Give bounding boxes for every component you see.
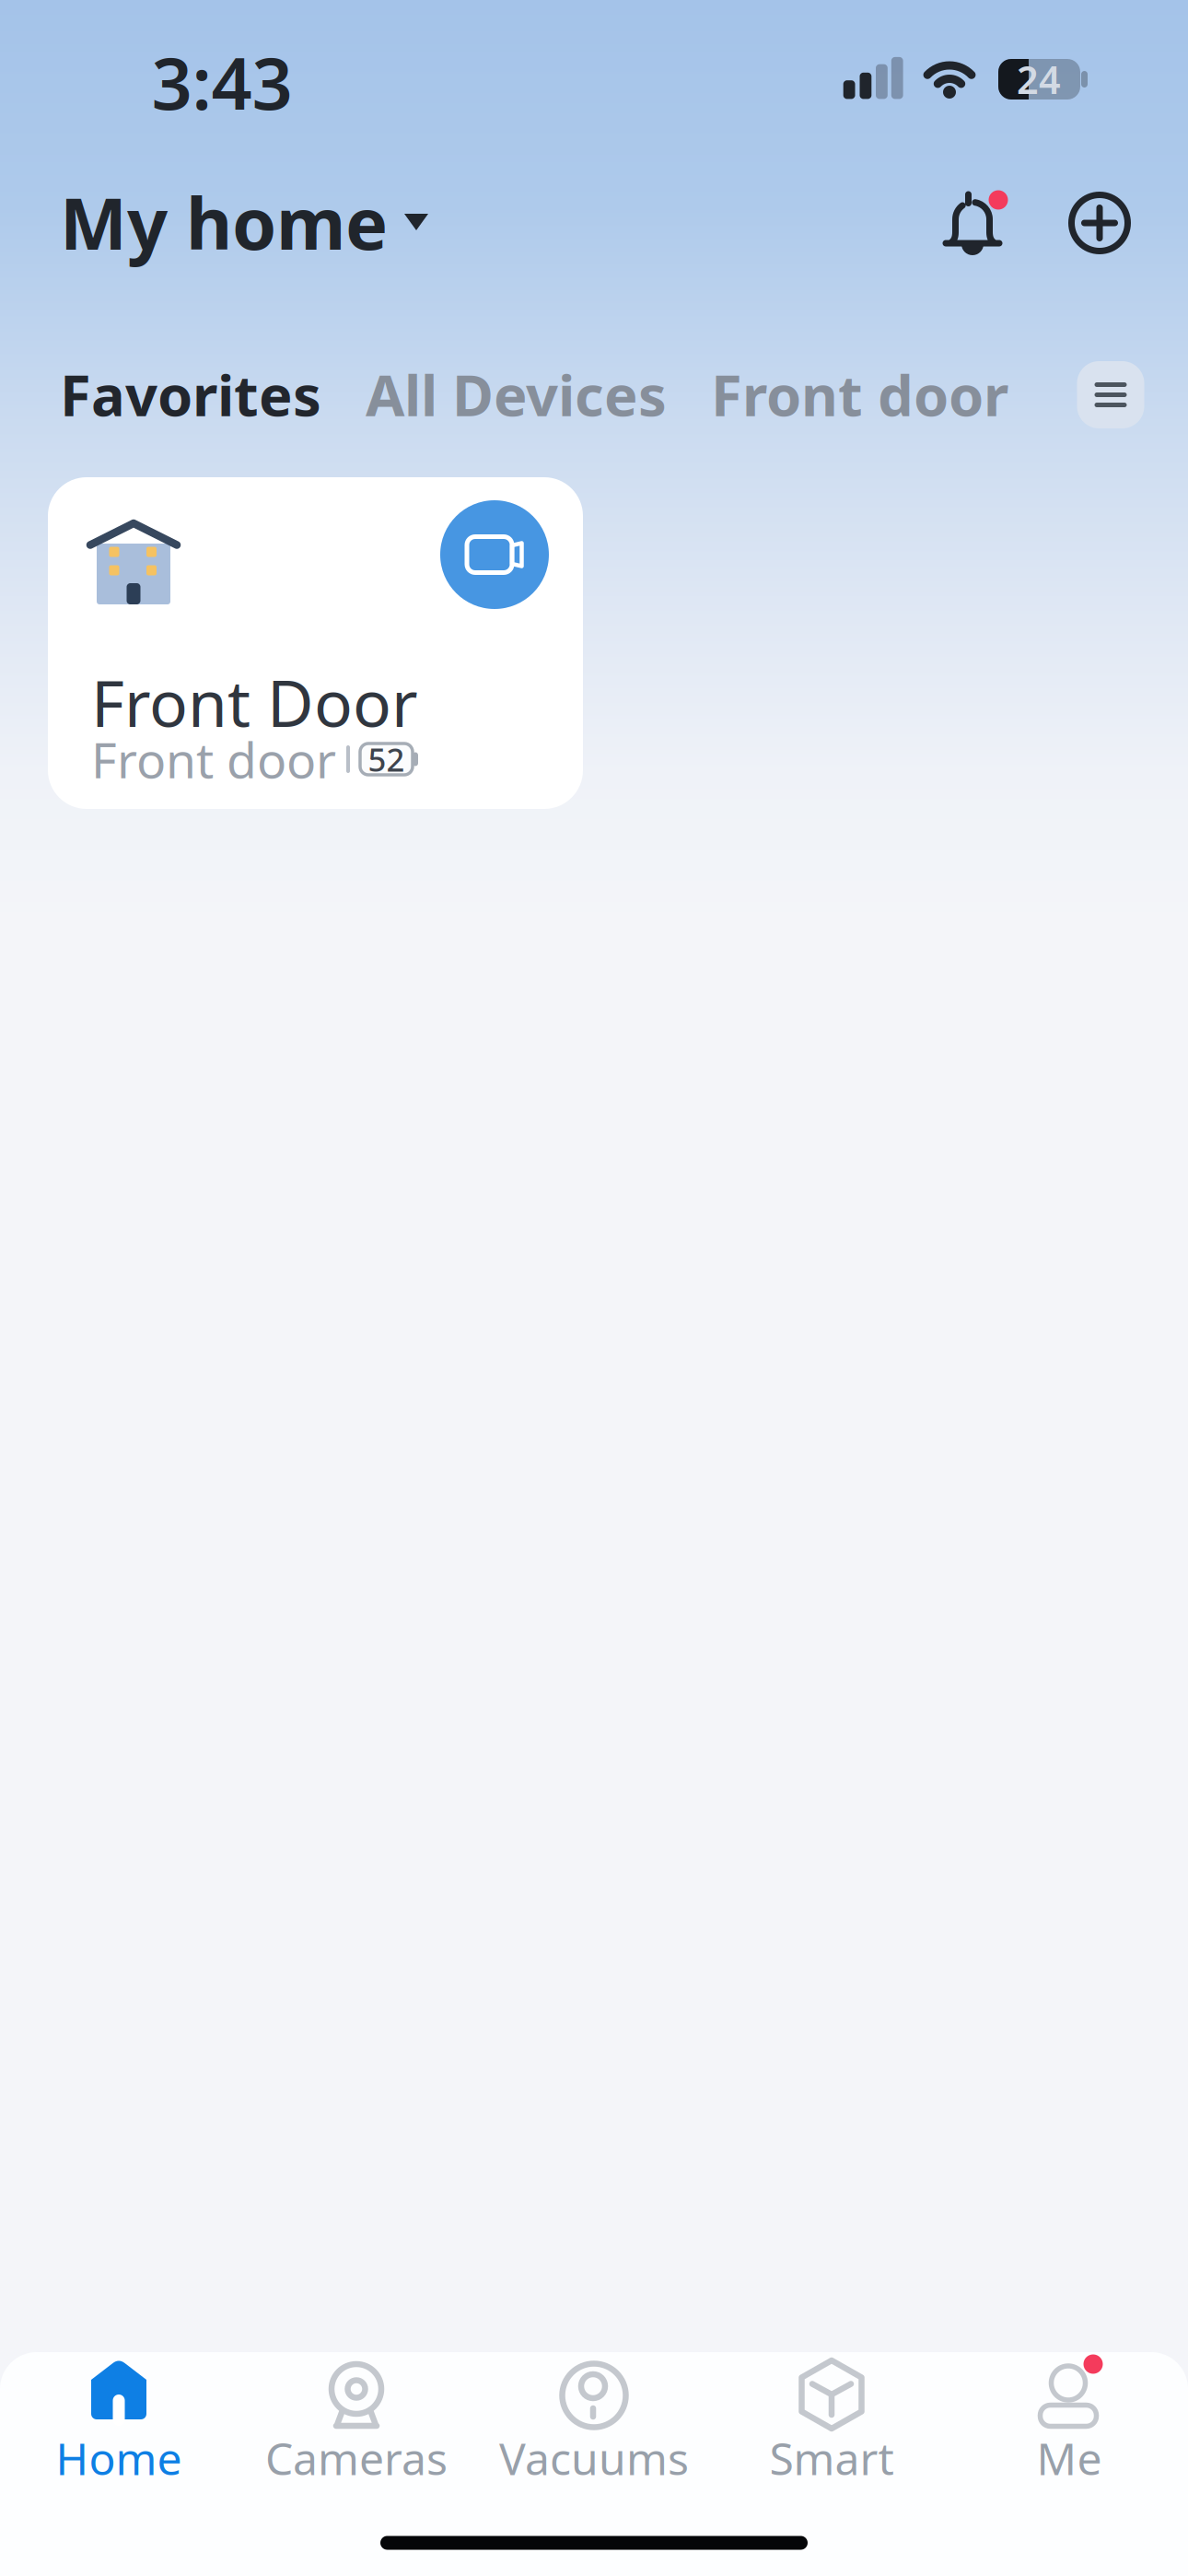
staticText: All Devices <box>366 357 667 432</box>
button[interactable]: Front Door <box>48 477 583 809</box>
button[interactable]: Me <box>950 2352 1188 2500</box>
button[interactable]: All Devices <box>366 357 667 432</box>
button[interactable]: Favorites <box>60 357 321 432</box>
staticText: My home <box>60 175 388 269</box>
staticText: Smart <box>769 2429 894 2487</box>
staticText: Home <box>56 2429 182 2487</box>
button[interactable]: Home <box>0 2352 238 2500</box>
button[interactable]: Add device <box>1058 181 1141 264</box>
staticText: 3:43 <box>151 35 292 129</box>
staticText: Favorites <box>60 357 321 432</box>
staticText: Front Door <box>91 660 418 745</box>
button[interactable]: My home <box>60 181 447 263</box>
staticText: Front door <box>711 357 1008 432</box>
staticText: Vacuums <box>499 2429 689 2487</box>
staticText: Me <box>1037 2429 1102 2487</box>
staticText: 52 <box>368 738 405 780</box>
button[interactable]: Vacuums <box>475 2352 713 2500</box>
staticText: Front door <box>91 727 336 792</box>
button[interactable]: Front door <box>711 357 1008 432</box>
staticText: 24 <box>1017 54 1061 105</box>
button[interactable]: Smart <box>713 2352 950 2500</box>
button[interactable]: List view <box>1077 361 1144 428</box>
button[interactable]: Cameras <box>238 2352 475 2500</box>
staticText: Cameras <box>265 2429 448 2487</box>
button[interactable]: Notifications <box>931 182 1014 265</box>
